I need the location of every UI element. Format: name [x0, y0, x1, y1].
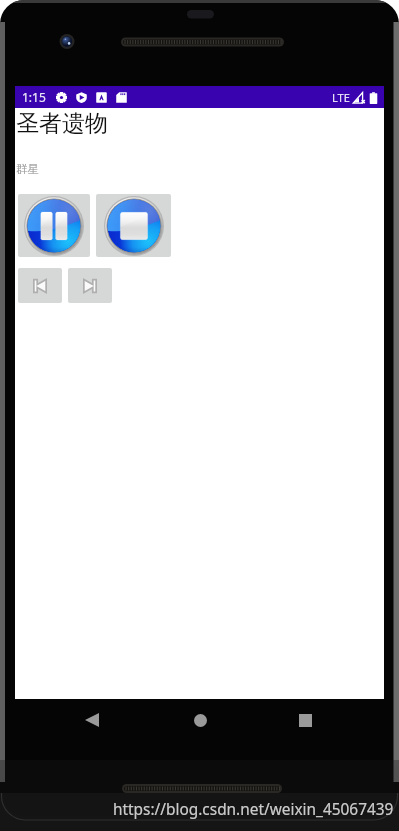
staticText: 1:15: [22, 89, 46, 105]
staticText: 群星: [16, 162, 39, 176]
staticText: LTE: [332, 90, 350, 105]
button[interactable]: Media control: [18, 194, 90, 257]
button[interactable]: Back: [77, 705, 107, 735]
button[interactable]: Recents: [290, 705, 320, 735]
button[interactable]: Previous: [18, 268, 62, 303]
staticText: https://blog.csdn.net/weixin_45067439: [113, 799, 394, 820]
button[interactable]: Next: [68, 268, 112, 303]
button[interactable]: Home: [185, 705, 215, 735]
staticText: 圣者遗物: [16, 109, 108, 138]
button[interactable]: Media control: [96, 194, 171, 257]
